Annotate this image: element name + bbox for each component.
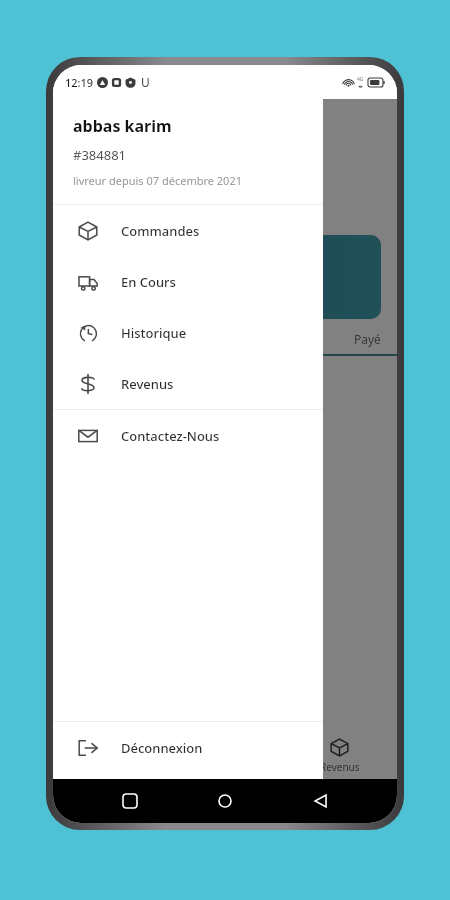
button[interactable]: Recents <box>111 782 149 820</box>
button[interactable]: Contactez-Nous <box>53 410 323 461</box>
staticText: revenus : 3130.00 DA <box>69 398 201 416</box>
button[interactable]: Total <box>69 235 381 319</box>
staticText: Payé <box>354 331 381 347</box>
staticText: Delivery <box>69 187 162 217</box>
button[interactable]: En Cours <box>167 733 282 779</box>
button[interactable]: Menu <box>67 108 93 134</box>
staticText: 3130.00 DA <box>169 274 282 303</box>
staticText: Contactez-Nous <box>121 427 220 445</box>
staticText: Revenus <box>105 108 190 135</box>
staticText: 07 décembre 2021 <box>69 370 182 388</box>
button[interactable]: Commandes <box>53 733 167 779</box>
staticText: Commandes <box>121 222 200 240</box>
button[interactable]: Commandes <box>53 205 323 256</box>
button[interactable]: En Cours <box>53 256 323 307</box>
button[interactable]: Back <box>302 782 340 820</box>
staticText: commandes : 12 <box>69 420 174 438</box>
staticText: Vos revenus <box>69 157 204 187</box>
staticText: En Cours <box>121 273 176 291</box>
staticText: livreur depuis 07 décembre 2021 <box>73 173 242 188</box>
staticText: Historique <box>121 324 187 342</box>
staticText: Revenus <box>320 760 360 774</box>
button[interactable]: Historique <box>53 307 323 358</box>
staticText: abbas karim <box>73 115 172 137</box>
button[interactable]: Revenus <box>282 733 397 779</box>
staticText: 12:19 <box>65 75 94 90</box>
staticText: ◂▸ <box>358 83 364 89</box>
button[interactable]: Déconnexion <box>53 722 323 773</box>
staticText: #384881 <box>73 146 127 164</box>
button[interactable]: Revenus <box>53 358 323 409</box>
staticText: Déconnexion <box>121 739 203 757</box>
button[interactable]: Home <box>206 782 244 820</box>
staticText: 4G <box>357 76 364 83</box>
staticText: Revenus <box>121 375 174 393</box>
staticText: U <box>141 74 150 90</box>
